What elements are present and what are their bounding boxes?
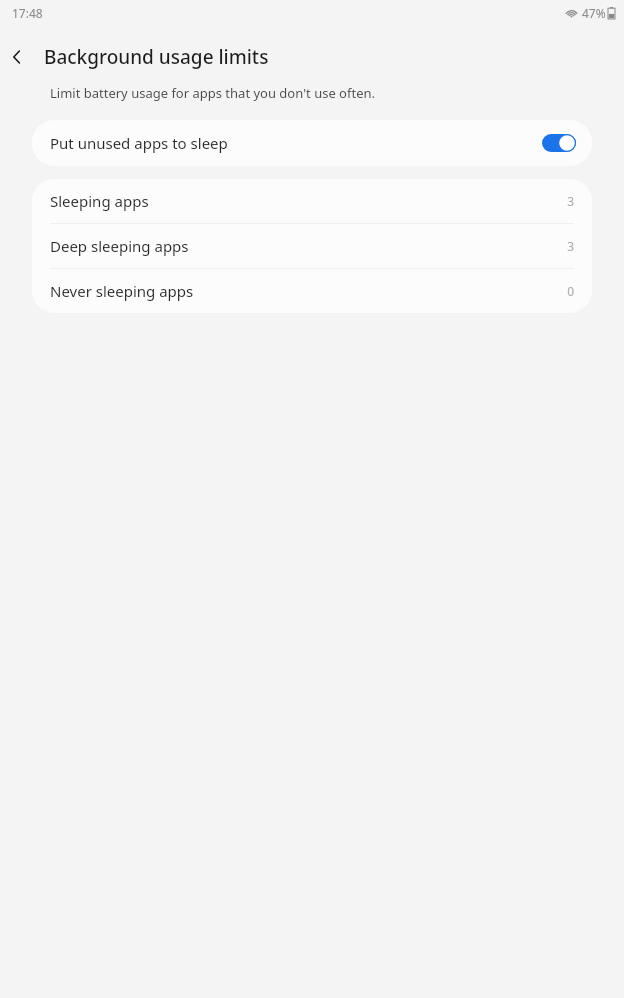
- button[interactable]: Never sleeping apps: [32, 269, 592, 313]
- staticText: Sleeping apps: [50, 191, 149, 211]
- staticText: Put unused apps to sleep: [50, 133, 228, 153]
- button[interactable]: Put unused apps to sleep: [32, 120, 592, 166]
- button[interactable]: Deep sleeping apps: [32, 224, 592, 268]
- staticText: 0: [567, 283, 574, 299]
- button[interactable]: Sleeping apps: [32, 179, 592, 223]
- staticText: Background usage limits: [44, 44, 269, 70]
- staticText: Deep sleeping apps: [50, 236, 189, 256]
- staticText: 17:48: [12, 5, 43, 21]
- button[interactable]: Put unused apps to sleep toggle: [542, 134, 576, 152]
- staticText: Never sleeping apps: [50, 281, 194, 301]
- staticText: Limit battery usage for apps that you do…: [50, 84, 375, 102]
- staticText: 47%: [582, 5, 606, 21]
- staticText: 3: [567, 238, 574, 254]
- staticText: 3: [567, 193, 574, 209]
- button[interactable]: Back: [0, 40, 34, 74]
